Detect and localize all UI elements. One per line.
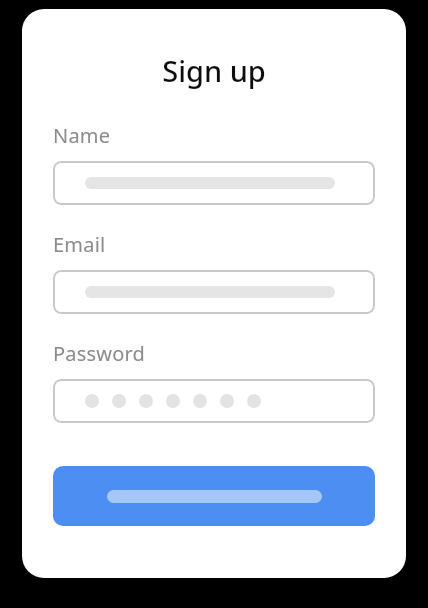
button[interactable]: [53, 161, 375, 205]
button[interactable]: Sign up: [53, 466, 375, 526]
button[interactable]: [53, 270, 375, 314]
button[interactable]: [53, 379, 375, 423]
staticText: Name: [53, 122, 111, 149]
staticText: Email: [53, 231, 106, 258]
staticText: Sign up: [53, 51, 375, 90]
staticText: Password: [53, 340, 146, 367]
